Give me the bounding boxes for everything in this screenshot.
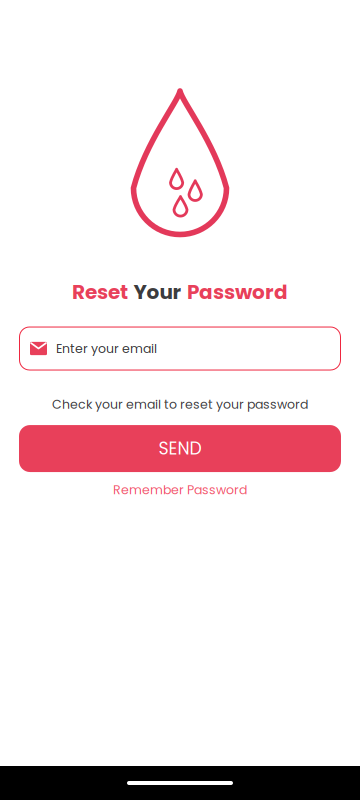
button[interactable]: SEND bbox=[19, 425, 341, 472]
button[interactable]: Remember Password bbox=[113, 481, 247, 498]
staticText: SEND bbox=[158, 436, 201, 461]
staticText: Your bbox=[133, 278, 181, 306]
staticText: Enter your email bbox=[56, 340, 157, 357]
staticText: Password bbox=[187, 278, 288, 306]
staticText: Remember Password bbox=[113, 481, 247, 498]
staticText: Reset bbox=[72, 278, 128, 306]
staticText: Check your email to reset your password bbox=[52, 395, 308, 413]
